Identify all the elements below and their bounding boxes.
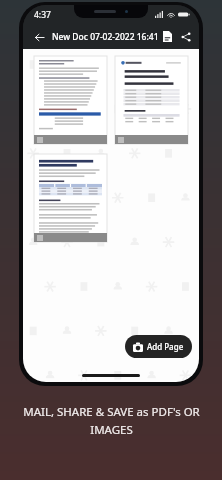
button[interactable] (34, 154, 107, 242)
staticText: MAIL, SHARE & SAVE as PDF's OR (23, 404, 200, 420)
staticText: IMAGES (90, 422, 133, 438)
button[interactable]: Add Page (125, 335, 192, 358)
staticText: 4:37 (34, 9, 51, 21)
button[interactable]: Back (30, 28, 48, 46)
staticText: New Doc 07-02-2022 16:41 (52, 31, 159, 43)
button[interactable]: Export as PDF (159, 28, 176, 45)
staticText: Add Page (147, 341, 184, 352)
button[interactable] (115, 56, 188, 144)
button[interactable] (34, 56, 107, 144)
button[interactable]: Share (179, 28, 192, 45)
